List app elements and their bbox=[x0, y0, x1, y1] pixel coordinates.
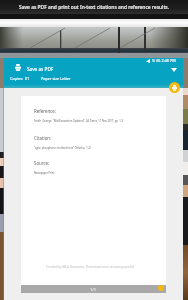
staticText: % 65 2:48 PM bbox=[152, 58, 176, 63]
staticText: Save as PDF bbox=[27, 66, 54, 72]
button[interactable]: Page handle bbox=[158, 285, 164, 291]
staticText: 1/1 bbox=[90, 287, 97, 292]
staticText: "type: phosphorus incident here" (Smith … bbox=[34, 146, 91, 150]
staticText: 01 bbox=[25, 76, 30, 81]
staticText: Citation: bbox=[34, 135, 52, 141]
staticText: Source: bbox=[34, 160, 50, 166]
staticText: Reference: bbox=[34, 108, 56, 114]
staticText: Created by MLA Generator. Download more … bbox=[46, 265, 134, 269]
staticText: Letter bbox=[60, 76, 71, 81]
staticText: Save as PDF and print out In-text citati… bbox=[19, 4, 169, 11]
button[interactable]: Collapse print options bbox=[167, 63, 180, 76]
button[interactable]: Print bbox=[169, 82, 180, 93]
staticText: Newspaper Print bbox=[34, 171, 55, 175]
staticText: Smith, George. "Mid-Excavation Updated".… bbox=[34, 119, 124, 123]
staticText: Paper size bbox=[41, 76, 60, 81]
staticText: Copies: bbox=[10, 76, 23, 81]
